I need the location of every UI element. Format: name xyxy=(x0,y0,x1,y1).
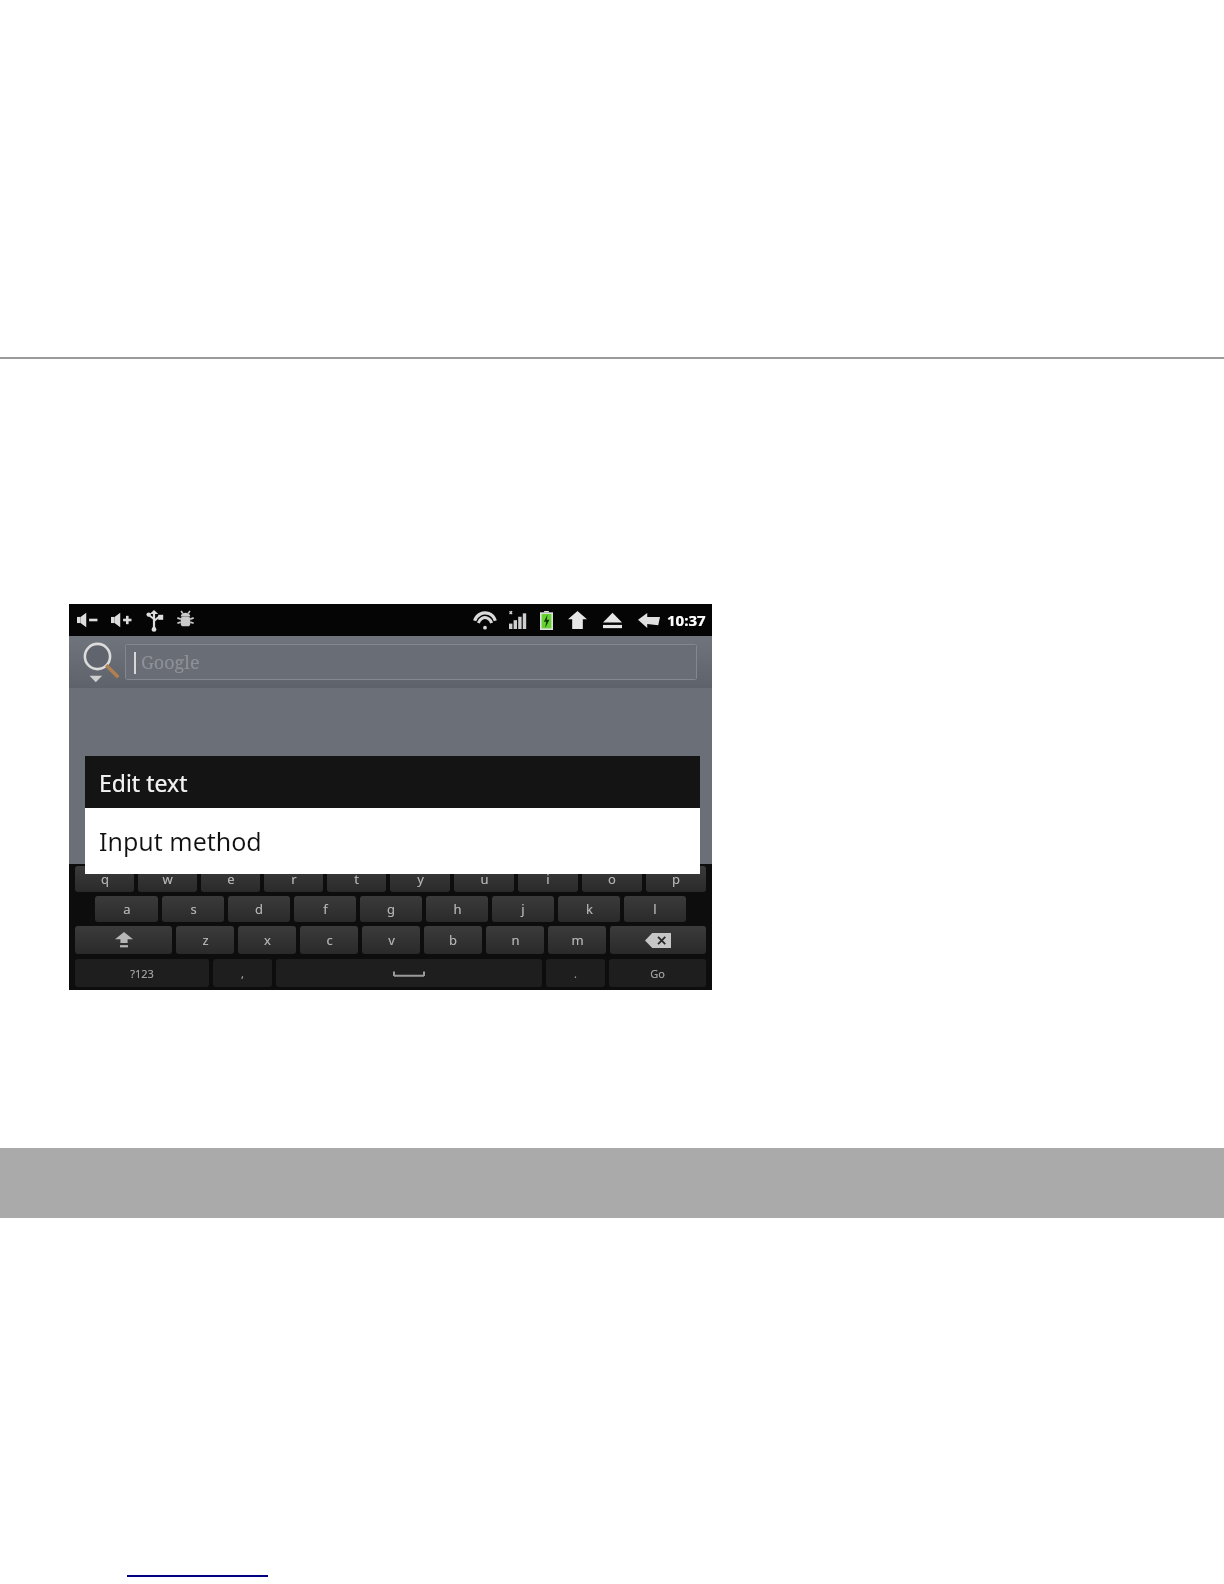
staticText: w xyxy=(162,870,173,888)
other: Back xyxy=(638,612,660,629)
staticText: h xyxy=(453,900,462,918)
staticText: v xyxy=(388,931,395,949)
staticText: g xyxy=(387,900,395,918)
button[interactable]: n xyxy=(486,926,544,954)
staticText: b xyxy=(449,931,457,949)
staticText: Go xyxy=(650,966,665,981)
button[interactable]: Google xyxy=(125,644,697,680)
button[interactable]: k xyxy=(558,896,620,922)
staticText: l xyxy=(653,900,657,918)
button[interactable]: t xyxy=(327,866,386,892)
button[interactable]: Shift xyxy=(75,926,172,954)
other: Home xyxy=(568,611,587,629)
other: Recent apps xyxy=(603,612,622,629)
button[interactable]: Search xyxy=(79,639,121,685)
button[interactable]: d xyxy=(228,896,290,922)
staticText: z xyxy=(202,931,209,949)
button[interactable]: c xyxy=(300,926,358,954)
button[interactable]: Space xyxy=(276,959,542,987)
button[interactable]: o xyxy=(582,866,642,892)
staticText: c xyxy=(326,931,333,949)
staticText: q xyxy=(101,870,109,888)
button[interactable]: u xyxy=(454,866,514,892)
button[interactable]: g xyxy=(360,896,422,922)
button[interactable]: v xyxy=(362,926,420,954)
staticText: x xyxy=(264,931,271,949)
button[interactable]: l xyxy=(624,896,686,922)
button[interactable]: Go xyxy=(609,959,706,987)
staticText: 10:37 xyxy=(667,610,706,630)
staticText: , xyxy=(241,966,244,981)
staticText: t xyxy=(354,870,359,888)
button[interactable]: i xyxy=(518,866,578,892)
staticText: Input method xyxy=(99,824,262,858)
button[interactable]: q xyxy=(75,866,134,892)
staticText: a xyxy=(123,900,131,918)
button[interactable]: m xyxy=(548,926,606,954)
button[interactable]: w xyxy=(138,866,197,892)
staticText: k xyxy=(586,900,593,918)
button[interactable]: a xyxy=(95,896,158,922)
staticText: . xyxy=(574,966,577,981)
staticText: r xyxy=(291,870,297,888)
button[interactable]: r xyxy=(264,866,323,892)
staticText: i xyxy=(546,870,550,888)
button[interactable]: z xyxy=(176,926,234,954)
button[interactable]: Delete xyxy=(610,926,706,954)
staticText: o xyxy=(608,870,616,888)
staticText: d xyxy=(255,900,263,918)
button[interactable]: . xyxy=(546,959,605,987)
staticText: y xyxy=(417,870,424,888)
staticText: Google xyxy=(141,650,200,675)
button[interactable]: ?123 xyxy=(75,959,209,987)
button[interactable]: e xyxy=(201,866,260,892)
staticText: u xyxy=(480,870,489,888)
staticText: e xyxy=(227,870,235,888)
button[interactable]: s xyxy=(162,896,224,922)
button[interactable]: j xyxy=(492,896,554,922)
button[interactable]: b xyxy=(424,926,482,954)
button[interactable]: h xyxy=(426,896,488,922)
staticText: n xyxy=(511,931,520,949)
staticText: f xyxy=(323,900,328,918)
button[interactable]: p xyxy=(646,866,706,892)
button[interactable]: f xyxy=(294,896,356,922)
staticText: m xyxy=(571,931,584,949)
staticText: Edit text xyxy=(99,767,188,798)
staticText: ?123 xyxy=(130,966,154,981)
button[interactable]: , xyxy=(213,959,272,987)
staticText: s xyxy=(190,900,197,918)
staticText: j xyxy=(521,900,525,918)
button[interactable]: Edit text xyxy=(85,756,700,808)
button[interactable]: y xyxy=(390,866,450,892)
staticText: p xyxy=(672,870,680,888)
button[interactable]: x xyxy=(238,926,296,954)
button[interactable]: Input method xyxy=(85,808,700,874)
